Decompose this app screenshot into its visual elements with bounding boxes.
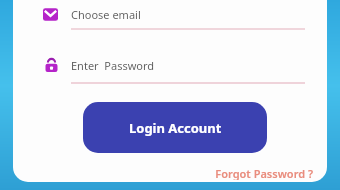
staticText: Choose email <box>71 7 141 22</box>
button[interactable]: Password <box>13 54 327 76</box>
staticText: Enter Password <box>71 58 155 73</box>
button[interactable]: Forgot Password ? <box>211 164 317 182</box>
staticText: Forgot Password ? <box>215 166 313 180</box>
staticText: Login Account <box>129 119 222 137</box>
button[interactable]: Login Account <box>83 102 267 153</box>
other: Email <box>43 7 58 22</box>
other: Password <box>44 58 59 73</box>
button[interactable]: Email <box>13 3 327 25</box>
